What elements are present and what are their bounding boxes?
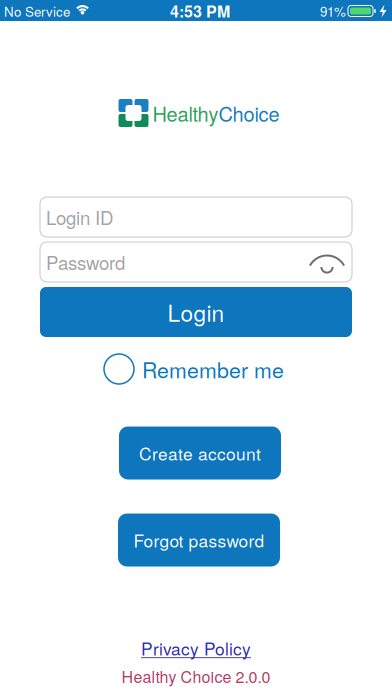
staticText: Healthy <box>152 99 218 127</box>
button[interactable]: Privacy Policy <box>141 636 251 660</box>
staticText: 91% <box>320 2 346 20</box>
staticText: Choice <box>218 99 279 127</box>
staticText: Healthy Choice 2.0.0 <box>121 665 270 687</box>
staticText: 4:53 PM <box>170 0 230 22</box>
button[interactable]: Forgot password <box>118 513 280 566</box>
button[interactable]: Login <box>40 287 352 337</box>
staticText: Password <box>46 249 125 275</box>
staticText: Login ID <box>46 204 113 230</box>
staticText: Create account <box>139 441 261 465</box>
button[interactable]: Login ID <box>40 197 352 237</box>
staticText: Privacy Policy <box>141 636 251 660</box>
button[interactable]: Password <box>40 242 352 282</box>
staticText: Forgot password <box>133 528 264 552</box>
staticText: Remember me <box>142 354 284 384</box>
button[interactable]: Show password <box>305 246 349 280</box>
staticText: No Service <box>4 2 70 20</box>
button[interactable]: Create account <box>119 426 281 479</box>
staticText: Login <box>167 296 224 328</box>
button[interactable]: Remember me <box>104 354 284 384</box>
